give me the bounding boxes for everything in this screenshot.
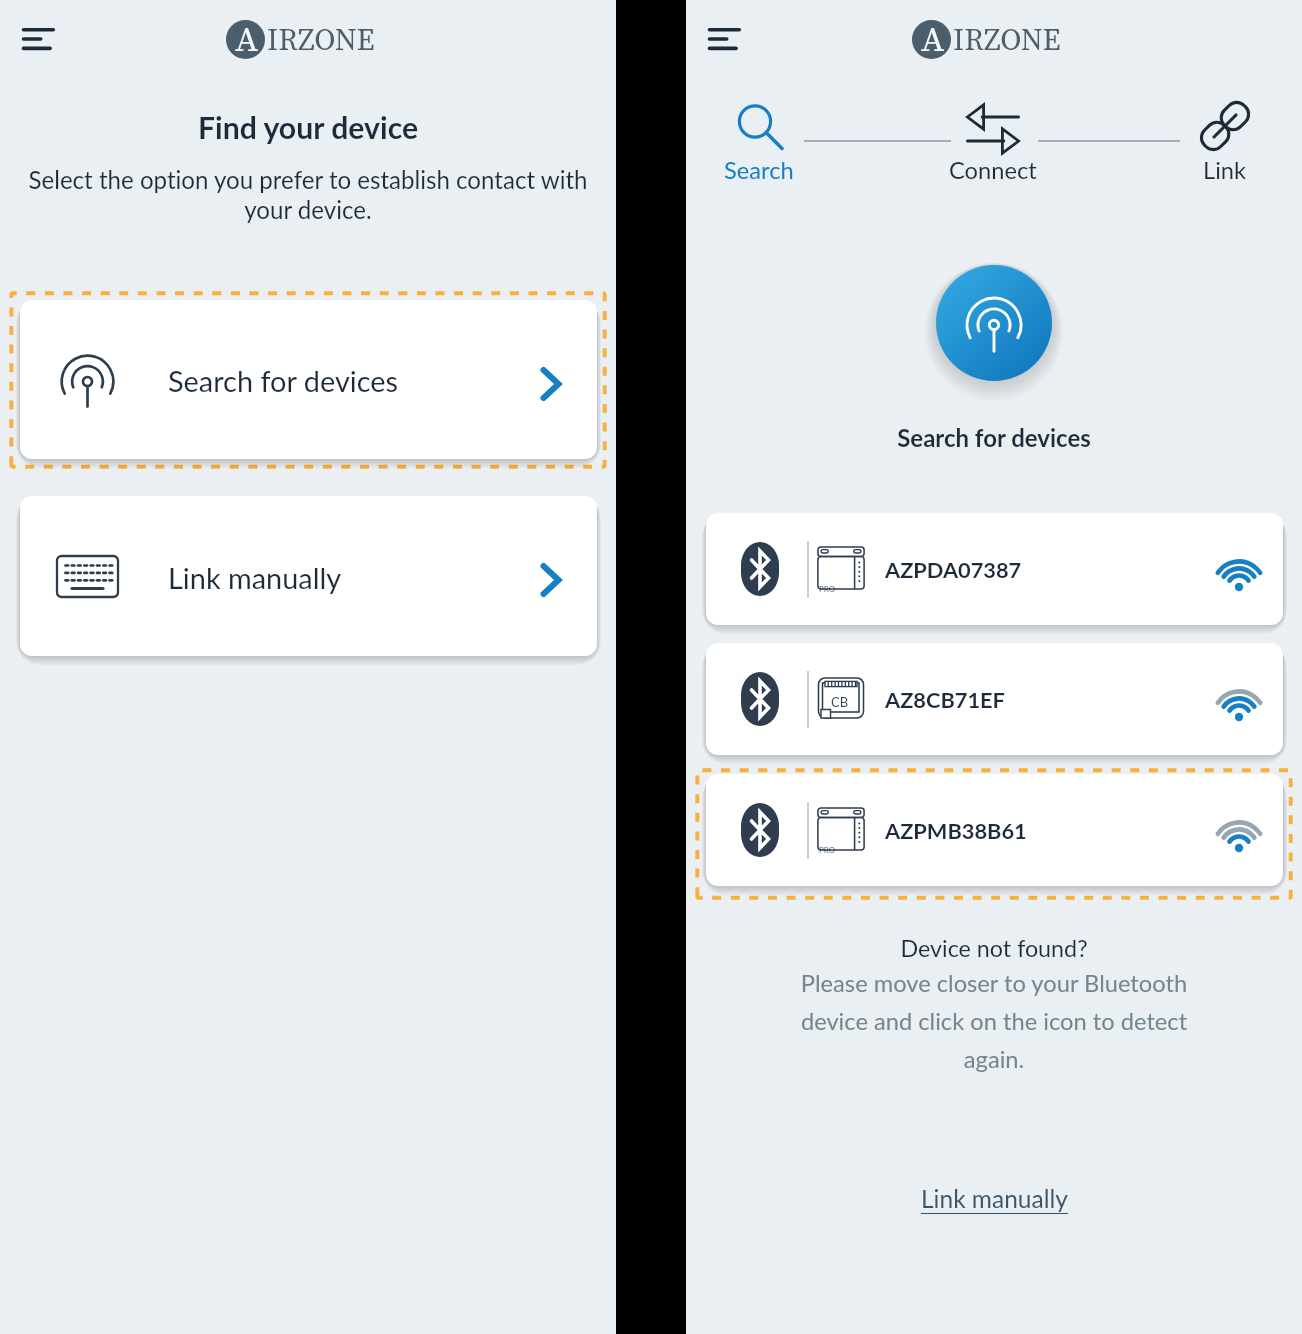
staticText: Select the option you prefer to establis… [20, 165, 596, 224]
button[interactable]: Search [689, 96, 829, 188]
staticText: Link manually [921, 1184, 1068, 1213]
staticText: Search [724, 156, 794, 184]
button[interactable]: Search for devices [936, 265, 1052, 381]
staticText: AZPDA07387 [885, 556, 1022, 582]
staticText: Link manually [168, 560, 342, 595]
staticText: Search for devices [686, 423, 1302, 452]
staticText: IRZONE [267, 19, 375, 60]
staticText: IRZONE [953, 19, 1061, 60]
button[interactable]: Link manually [911, 1178, 1078, 1219]
staticText: Connect [949, 156, 1037, 184]
staticText: PRO [819, 584, 836, 594]
button[interactable]: PRO [706, 513, 1283, 625]
staticText: AZPMB38B61 [885, 817, 1027, 843]
button[interactable]: PRO [706, 774, 1283, 886]
staticText: CB [831, 694, 849, 710]
button[interactable]: Link [1155, 96, 1295, 188]
staticText: Find your device [0, 109, 616, 145]
staticText: AZ8CB71EF [885, 686, 1005, 712]
staticText: Please move closer to your Bluetooth dev… [784, 969, 1204, 1073]
staticText: Link [1203, 156, 1247, 184]
staticText: Device not found? [686, 934, 1302, 962]
button[interactable]: Search for devices [20, 300, 597, 459]
staticText: PRO [819, 845, 836, 855]
button[interactable]: Menu [686, 16, 762, 62]
staticText: A [235, 20, 259, 54]
button[interactable]: Link manually [20, 496, 597, 656]
button[interactable]: Menu [0, 16, 76, 62]
button[interactable]: CB [706, 643, 1283, 755]
staticText: Search for devices [168, 363, 399, 398]
staticText: A [921, 20, 945, 54]
button[interactable]: Connect [923, 96, 1063, 188]
